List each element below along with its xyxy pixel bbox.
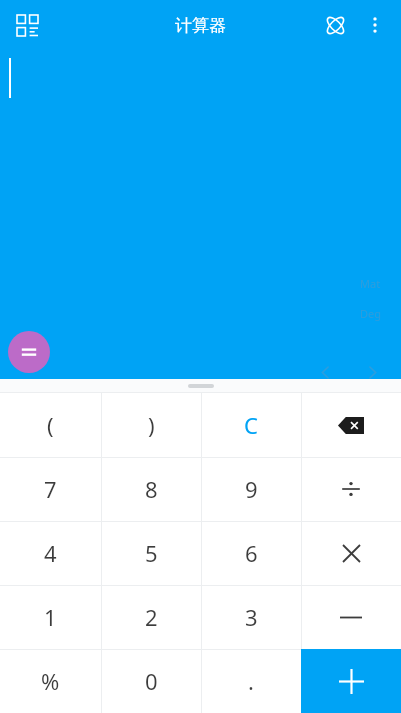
staticText: 7 [44, 474, 57, 504]
button[interactable]: 4 [0, 521, 101, 585]
button[interactable]: Previous expression [311, 358, 339, 386]
staticText: 9 [245, 474, 258, 504]
button[interactable]: % [0, 649, 101, 713]
button[interactable]: 1 [0, 585, 101, 649]
button[interactable]: ( [0, 392, 101, 457]
button[interactable]: 6 [201, 521, 301, 585]
button[interactable]: 7 [0, 457, 101, 521]
staticText: 8 [145, 474, 158, 504]
other: Minus [336, 602, 366, 632]
staticText: Mat [360, 276, 381, 291]
button[interactable]: . [201, 649, 301, 713]
staticText: ( [47, 410, 54, 440]
button[interactable]: Divide [301, 457, 401, 521]
button[interactable]: 2 [101, 585, 201, 649]
staticText: 3 [245, 602, 258, 632]
staticText: ) [148, 410, 155, 440]
button[interactable]: 3 [201, 585, 301, 649]
button[interactable]: C [201, 392, 301, 457]
button[interactable]: More options [355, 5, 395, 45]
other: Plus [333, 663, 369, 699]
button[interactable]: 8 [101, 457, 201, 521]
staticText: 0 [145, 666, 158, 696]
staticText: 计算器 [175, 15, 226, 36]
staticText: 5 [145, 538, 158, 568]
button[interactable]: Scientific mode [315, 5, 355, 45]
button[interactable]: Plus [301, 649, 401, 713]
staticText: 1 [44, 602, 57, 632]
button[interactable]: Equals [8, 331, 50, 373]
staticText: C [244, 410, 258, 440]
button[interactable]: 5 [101, 521, 201, 585]
button[interactable]: 9 [201, 457, 301, 521]
button[interactable]: 0 [101, 649, 201, 713]
staticText: % [41, 666, 60, 696]
other: Backspace [335, 409, 367, 441]
other: Divide [336, 474, 366, 504]
staticText: 2 [145, 602, 158, 632]
button[interactable]: Backspace [301, 392, 401, 457]
button[interactable]: Layout [7, 5, 47, 45]
staticText: . [248, 666, 254, 696]
staticText: 4 [44, 538, 57, 568]
button[interactable]: Multiply [301, 521, 401, 585]
button[interactable]: Next expression [358, 358, 386, 386]
staticText: 6 [245, 538, 258, 568]
other: Multiply [336, 538, 366, 568]
button[interactable]: ) [101, 392, 201, 457]
staticText: Deg [360, 306, 381, 321]
button[interactable]: Minus [301, 585, 401, 649]
